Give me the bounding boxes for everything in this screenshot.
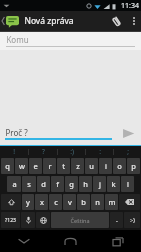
staticText: t xyxy=(62,161,65,171)
staticText: e xyxy=(33,161,38,171)
button[interactable]: w xyxy=(15,158,28,174)
button[interactable]: Proč ? xyxy=(5,126,112,140)
staticText: f xyxy=(56,179,59,189)
button[interactable]: ; xyxy=(114,146,141,157)
staticText: Komu xyxy=(6,34,29,45)
button[interactable]: e xyxy=(29,158,42,174)
button[interactable]: Čeština xyxy=(51,212,109,228)
button[interactable]: q xyxy=(1,158,14,174)
button[interactable]: a xyxy=(7,176,21,192)
button[interactable]: x xyxy=(35,194,48,210)
button[interactable]: i xyxy=(99,158,112,174)
button[interactable]: Voice input xyxy=(21,212,35,228)
button[interactable]: f xyxy=(51,176,64,192)
staticText: u xyxy=(89,161,94,171)
staticText: g xyxy=(69,179,74,189)
staticText: j xyxy=(99,179,101,189)
button[interactable]: c xyxy=(49,194,62,210)
staticText: r xyxy=(48,161,52,171)
button[interactable]: Komu xyxy=(0,32,141,50)
staticText: x xyxy=(40,197,44,207)
button[interactable]: Send xyxy=(118,124,138,142)
staticText: : xyxy=(99,147,101,156)
button[interactable]: g xyxy=(65,176,78,192)
staticText: m xyxy=(108,197,116,207)
staticText: z xyxy=(76,161,80,171)
button[interactable]: Navigate up xyxy=(0,11,21,31)
button[interactable]: Backspace xyxy=(119,194,140,210)
staticText: s xyxy=(27,179,31,189)
staticText: 11:34 xyxy=(121,1,139,11)
staticText: Čeština xyxy=(70,217,90,224)
staticText: ; xyxy=(127,147,129,156)
button[interactable]: ! xyxy=(0,146,28,157)
staticText: l xyxy=(127,179,129,189)
staticText: p xyxy=(131,161,136,171)
staticText: w xyxy=(19,161,25,171)
staticText: q xyxy=(5,161,10,171)
staticText: Nová zpráva xyxy=(24,15,74,27)
staticText: ? xyxy=(42,147,45,156)
button[interactable]: m xyxy=(105,194,118,210)
button[interactable]: t xyxy=(57,158,70,174)
button[interactable]: r xyxy=(43,158,56,174)
button[interactable]: ? xyxy=(29,146,57,157)
button[interactable]: p xyxy=(127,158,140,174)
button[interactable]: n xyxy=(91,194,104,210)
staticText: b xyxy=(81,197,86,207)
button[interactable]: o xyxy=(113,158,126,174)
button[interactable]: Shift xyxy=(1,194,21,210)
staticText: :-) xyxy=(130,217,135,224)
button[interactable]: Attach xyxy=(105,11,127,31)
button[interactable]: s xyxy=(22,176,36,192)
staticText: h xyxy=(83,179,88,189)
staticText: y xyxy=(26,197,30,207)
button[interactable]: Smiley xyxy=(124,212,140,228)
button[interactable]: h xyxy=(79,176,92,192)
button[interactable]: Home xyxy=(47,230,94,252)
button[interactable]: More options xyxy=(127,11,141,31)
button[interactable]: l xyxy=(121,176,134,192)
button[interactable]: z xyxy=(71,158,84,174)
staticText: Proč ? xyxy=(5,127,28,138)
button[interactable]: j xyxy=(93,176,106,192)
button[interactable]: Recent apps xyxy=(94,230,141,252)
staticText: :) xyxy=(70,147,74,156)
staticText: n xyxy=(95,197,100,207)
staticText: v xyxy=(68,197,72,207)
button[interactable]: :) xyxy=(58,146,85,157)
staticText: d xyxy=(41,179,46,189)
staticText: a xyxy=(12,179,17,189)
staticText: k xyxy=(111,179,116,189)
staticText: ! xyxy=(13,147,15,156)
button[interactable]: b xyxy=(77,194,90,210)
button[interactable]: Symbols xyxy=(1,212,20,228)
staticText: . xyxy=(116,215,118,225)
staticText: ?123 xyxy=(5,217,16,224)
button[interactable]: : xyxy=(86,146,113,157)
staticText: c xyxy=(54,197,58,207)
button[interactable]: y xyxy=(22,194,34,210)
staticText: o xyxy=(117,161,122,171)
staticText: i xyxy=(105,161,107,171)
button[interactable]: Period xyxy=(110,212,123,228)
button[interactable]: d xyxy=(37,176,50,192)
button[interactable]: u xyxy=(85,158,98,174)
button[interactable]: Hide keyboard xyxy=(0,230,47,252)
button[interactable]: k xyxy=(107,176,120,192)
button[interactable]: v xyxy=(63,194,76,210)
button[interactable]: Change language xyxy=(36,212,50,228)
